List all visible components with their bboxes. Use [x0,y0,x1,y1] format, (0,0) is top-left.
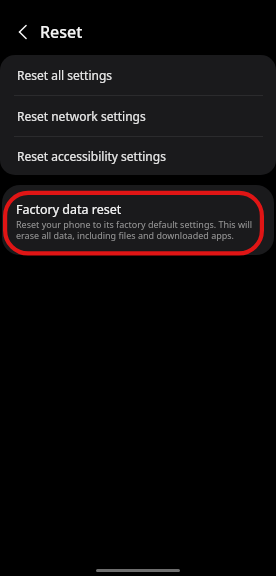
staticText: Reset network settings [17,108,146,124]
button[interactable]: Reset all settings [0,55,276,95]
button[interactable]: Back [12,21,34,43]
staticText: Factory data reset [16,201,122,218]
staticText: Reset all settings [17,67,113,83]
button[interactable]: Factory data reset [2,185,274,255]
staticText: Reset accessibility settings [17,148,166,164]
staticText: Reset your phone to its factory default … [16,218,253,242]
button[interactable]: Reset network settings [0,96,276,136]
button[interactable]: Reset accessibility settings [0,137,276,175]
staticText: Reset [40,21,83,43]
